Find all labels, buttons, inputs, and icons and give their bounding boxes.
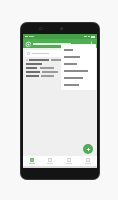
button[interactable]: Reports: [59, 156, 78, 166]
button[interactable]: Menu: [25, 41, 31, 47]
button[interactable]: Home: [23, 156, 41, 166]
button[interactable]: [61, 81, 96, 88]
button[interactable]: Settings: [78, 156, 97, 166]
button[interactable]: [25, 50, 95, 57]
button[interactable]: [61, 67, 96, 74]
button[interactable]: More options: [88, 40, 95, 47]
button[interactable]: [61, 53, 96, 60]
button[interactable]: List: [41, 156, 59, 166]
button[interactable]: [61, 46, 96, 53]
button[interactable]: [61, 60, 96, 67]
button[interactable]: Add: [83, 144, 93, 154]
button[interactable]: [61, 74, 96, 81]
